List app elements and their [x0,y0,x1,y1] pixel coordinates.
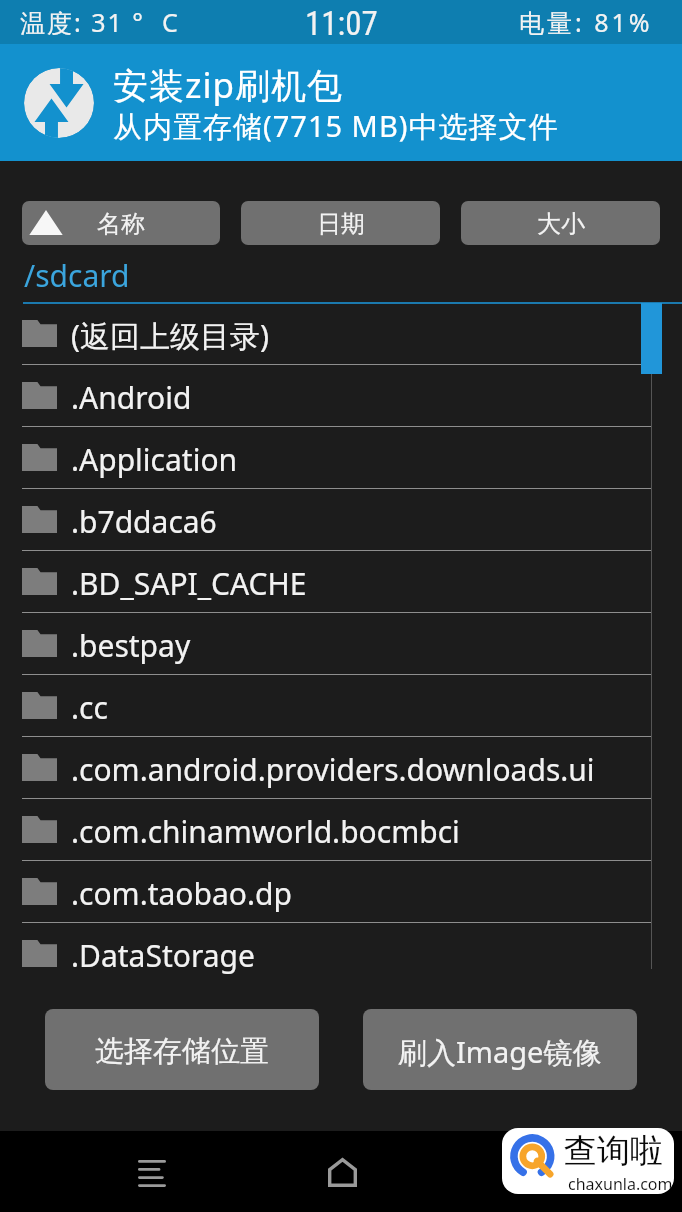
button[interactable]: .com.chinamworld.bocmbci [0,799,682,861]
staticText: 刷入Image镜像 [398,1032,602,1072]
staticText: .b7ddaca6 [71,501,217,542]
button[interactable]: 名称 [22,201,220,245]
button[interactable]: .bestpay [0,613,682,675]
staticText: 日期 [317,209,365,239]
button[interactable]: 大小 [461,201,660,245]
button[interactable]: Menu [124,1145,180,1201]
staticText: /sdcard [24,255,130,296]
button[interactable]: 日期 [241,201,440,245]
staticText: 从内置存储(7715 MB)中选择文件 [113,106,559,146]
staticText: chaxunla.com [568,1173,673,1194]
staticText: .Android [71,377,192,418]
staticText: .Application [71,439,238,480]
button[interactable]: .Application [0,427,682,489]
staticText: .com.taobao.dp [71,873,292,914]
staticText: (返回上级目录) [71,315,269,356]
button[interactable]: .b7ddaca6 [0,489,682,551]
button[interactable]: .BD_SAPI_CACHE [0,551,682,613]
staticText: .com.chinamworld.bocmbci [71,811,460,852]
button[interactable]: 选择存储位置 [45,1009,319,1090]
staticText: .DataStorage [71,935,255,976]
staticText: 安装zip刷机包 [113,61,344,109]
staticText: .BD_SAPI_CACHE [71,563,307,604]
staticText: 温度: 31 ° C [20,5,180,39]
staticText: 选择存储位置 [95,1033,269,1070]
button[interactable]: (返回上级目录) [0,303,682,365]
staticText: .bestpay [71,625,191,666]
staticText: 名称 [97,209,145,239]
button[interactable]: .com.taobao.dp [0,861,682,923]
staticText: .cc [71,687,108,728]
staticText: .com.android.providers.downloads.ui [71,749,595,790]
staticText: 查询啦 [564,1130,663,1172]
button[interactable]: .cc [0,675,682,737]
staticText: 电量: 81% [519,5,653,39]
button[interactable]: .Android [0,365,682,427]
button[interactable]: .com.android.providers.downloads.ui [0,737,682,799]
button[interactable]: 刷入Image镜像 [363,1009,637,1090]
button[interactable]: .DataStorage [0,923,682,984]
button[interactable]: Home [313,1143,371,1201]
staticText: 大小 [537,209,585,239]
staticText: 11:07 [305,4,378,43]
